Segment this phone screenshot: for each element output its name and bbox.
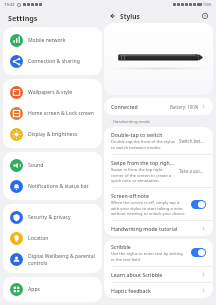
staticText: Security & privacy [28, 214, 95, 221]
staticText: Scribble [111, 243, 131, 250]
staticText: Stylus [120, 12, 140, 21]
button[interactable]: Wallpapers & style [6, 82, 99, 103]
staticText: Connected [111, 103, 138, 110]
button[interactable]: Scribble [104, 239, 213, 267]
staticText: Switch bet... [179, 138, 204, 144]
staticText: Wallpapers & style [28, 89, 95, 96]
staticText: Connection & sharing [28, 58, 95, 65]
button[interactable]: Help [200, 11, 210, 21]
button[interactable]: Apps [6, 280, 99, 299]
staticText: Double-tap the front of the stylus to sw… [111, 139, 175, 150]
staticText: Battery: 100% [170, 104, 199, 110]
staticText: 100% [203, 2, 212, 7]
staticText: Mobile network [28, 37, 95, 44]
staticText: Notifications & status bar [28, 183, 95, 190]
staticText: Take a qui... [179, 168, 204, 174]
button[interactable]: Screen-off note [104, 188, 213, 221]
button[interactable]: Haptic feedback [104, 283, 213, 298]
button[interactable]: Display & brightness [6, 124, 99, 145]
button[interactable]: Home screen & Lock screen [6, 103, 99, 124]
staticText: Settings [8, 13, 38, 23]
button[interactable]: Double-tap to switch [104, 127, 213, 155]
staticText: Double-tap to switch [111, 131, 163, 138]
staticText: When the screen is off, simply tap it wi… [111, 200, 187, 216]
staticText: Handwriting mode tutorial [111, 225, 178, 232]
staticText: Sound [28, 162, 95, 169]
button[interactable]: Sound [6, 155, 99, 176]
button[interactable]: Security & privacy [6, 207, 99, 228]
button[interactable]: Swipe from the top right corner [104, 155, 213, 188]
staticText: Swipe from the top right corner [111, 159, 175, 166]
staticText: 19:22 [4, 2, 15, 8]
staticText: Learn about Scribble [111, 271, 163, 278]
staticText: Digital Wellbeing & parental controls [28, 253, 95, 266]
button[interactable]: Connected [104, 98, 213, 115]
button[interactable]: Back [107, 11, 117, 21]
staticText: Display & brightness [28, 131, 95, 138]
button[interactable]: Digital Wellbeing & parental controls [6, 249, 99, 270]
staticText: Haptic feedback [111, 287, 152, 294]
button[interactable]: Mobile network [6, 30, 99, 51]
staticText: Swipe in from the top right corner of th… [111, 167, 175, 183]
button[interactable]: Location [6, 228, 99, 249]
button[interactable]: Toggle [191, 248, 206, 257]
button[interactable]: Toggle [191, 200, 206, 209]
staticText: Home screen & Lock screen [28, 110, 95, 117]
staticText: Apps [28, 286, 95, 293]
staticText: Screen-off note [111, 192, 149, 199]
button[interactable]: Handwriting mode tutorial [104, 221, 213, 236]
staticText: Handwriting mode [113, 119, 150, 125]
staticText: Use the stylus to enter text by writing … [111, 251, 187, 262]
button[interactable]: Notifications & status bar [6, 176, 99, 197]
staticText: Location [28, 235, 95, 242]
button[interactable]: Learn about Scribble [104, 267, 213, 283]
button[interactable]: Connection & sharing [6, 51, 99, 72]
